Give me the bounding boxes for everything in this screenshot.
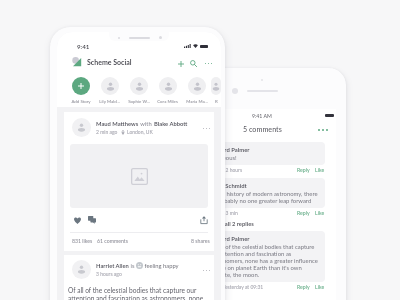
staticText: 5 likes 13 min: [205, 210, 238, 216]
button[interactable]: Lily Mald...: [95, 77, 124, 104]
button[interactable]: Like: [315, 167, 325, 173]
button[interactable]: Like: [315, 210, 325, 216]
staticText: with: [139, 120, 154, 127]
staticText: See all 2 replies: [214, 220, 254, 227]
staticText: Blake Abbott: [154, 120, 188, 127]
staticText: 12 likes 2 hours: [205, 167, 243, 173]
staticText: Edward Palmer: [210, 146, 250, 153]
staticText: satellite, the moon.: [210, 271, 260, 278]
button[interactable]: More options: [203, 58, 214, 69]
staticText: Sophie W...: [128, 99, 150, 104]
button[interactable]: Comment: [87, 215, 97, 225]
button[interactable]: Reply: [297, 210, 310, 216]
staticText: 3 hours ago: [96, 271, 122, 277]
staticText: astronomers, none has a greater influenc…: [210, 257, 318, 264]
staticText: Add Story: [71, 99, 91, 104]
button[interactable]: Add Story: [66, 77, 95, 104]
staticText: attention and fascination as astronomers…: [68, 294, 204, 300]
button[interactable]: Reply: [297, 167, 310, 173]
staticText: our attention and fascination as: [210, 250, 292, 257]
button[interactable]: See all 2 replies: [209, 220, 325, 227]
button[interactable]: Sophie W...: [124, 77, 153, 104]
staticText: Maria Ma...: [186, 99, 208, 104]
staticText: 9:41: [77, 43, 90, 50]
staticText: 2 min ago: [96, 129, 118, 135]
button[interactable]: R: [211, 77, 221, 104]
button[interactable]: Add post: [175, 58, 186, 69]
staticText: Of all of the celestial bodies that capt…: [68, 286, 197, 294]
button[interactable]: Share: [199, 215, 209, 225]
staticText: on life on planet Earth than it's own: [210, 264, 302, 271]
staticText: Gorgeous!: [210, 154, 237, 161]
staticText: 8 shares: [191, 238, 210, 244]
button[interactable]: Like: [315, 284, 325, 290]
button[interactable]: Post options: [201, 123, 211, 133]
staticText: R: [215, 99, 218, 104]
staticText: feeling happy: [143, 262, 179, 269]
staticText: Lily Mald...: [99, 99, 120, 104]
staticText: 3 likes Yesterday at 09:31: [205, 284, 264, 290]
button[interactable]: Katie Schmidt: [204, 178, 325, 208]
button[interactable]: Search: [188, 58, 199, 69]
button[interactable]: Like: [72, 215, 82, 225]
staticText: Harriet Allen: [96, 262, 129, 269]
button[interactable]: Post options: [201, 265, 211, 275]
staticText: In the history of modern astronomy, ther…: [210, 190, 318, 197]
staticText: Scheme Social: [87, 58, 132, 66]
button[interactable]: Cora Miles: [153, 77, 182, 104]
staticText: 5 comments: [243, 125, 282, 134]
button[interactable]: Reply: [297, 284, 310, 290]
staticText: 61 comments: [97, 238, 128, 244]
staticText: is probably no one greater leap forward: [210, 197, 312, 204]
staticText: Of all of the celestial bodies that capt…: [210, 243, 315, 250]
button[interactable]: Maria Ma...: [182, 77, 211, 104]
staticText: 9:41 AM: [252, 113, 272, 119]
staticText: London, UK: [127, 129, 153, 135]
staticText: Katie Schmidt: [210, 182, 247, 189]
staticText: 831 likes: [72, 238, 93, 244]
button[interactable]: Edward Palmer: [204, 142, 325, 165]
staticText: Maud Matthews: [96, 120, 139, 127]
staticText: Edward Palmer: [210, 235, 250, 242]
staticText: Cora Miles: [157, 99, 178, 104]
button[interactable]: Edward Palmer: [204, 231, 325, 282]
staticText: is: [129, 262, 136, 269]
